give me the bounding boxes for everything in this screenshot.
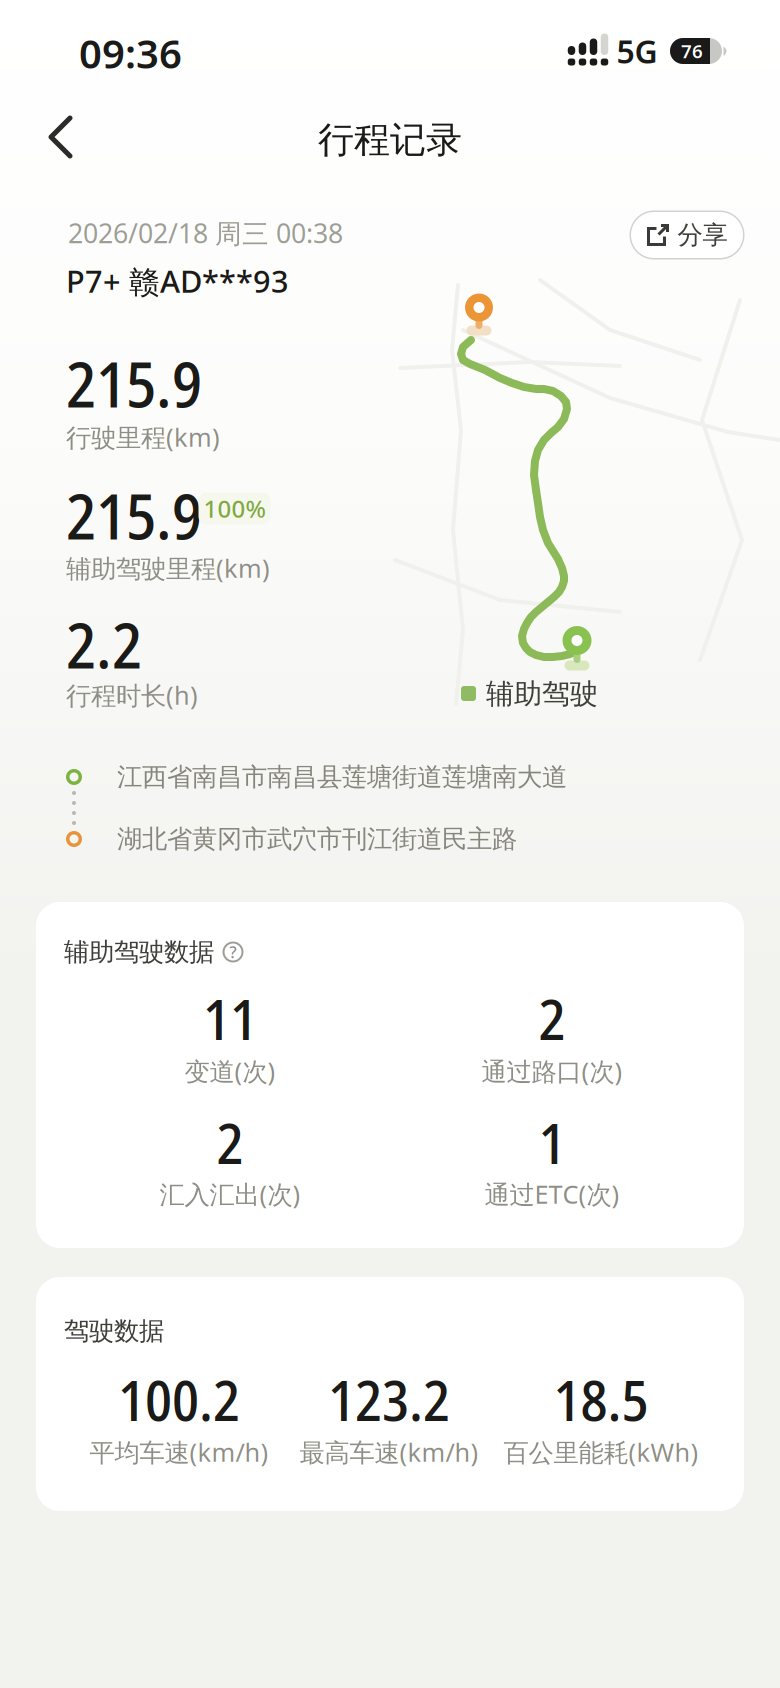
staticText: 76	[681, 39, 703, 63]
staticText: 2026/02/18 周三 00:38	[68, 215, 343, 251]
button[interactable]: 辅助驾驶数据说明	[218, 937, 248, 967]
staticText: 行程记录	[318, 118, 462, 162]
staticText: 辅助驾驶数据	[64, 936, 214, 967]
staticText: ?	[229, 941, 236, 963]
staticText: 分享	[677, 219, 727, 250]
staticText: 变道(次)	[184, 1054, 275, 1088]
staticText: 1	[538, 1103, 565, 1181]
staticText: 11	[203, 979, 257, 1057]
staticText: 百公里能耗(kWh)	[503, 1435, 698, 1469]
staticText: 09:36	[79, 26, 182, 79]
staticText: 平均车速(km/h)	[89, 1435, 268, 1469]
staticText: P7+ 赣AD***93	[66, 261, 289, 301]
staticText: 湖北省黄冈市武穴市刊江街道民主路	[117, 823, 517, 854]
staticText: 最高车速(km/h)	[299, 1435, 478, 1469]
staticText: 2	[216, 1103, 243, 1181]
staticText: 100.2	[118, 1360, 240, 1438]
staticText: 行程时长(h)	[66, 678, 198, 712]
staticText: 18.5	[553, 1360, 648, 1438]
staticText: 215.9	[66, 472, 202, 558]
staticText: 2	[538, 979, 565, 1057]
staticText: 汇入汇出(次)	[159, 1177, 300, 1211]
button[interactable]: 分享	[629, 210, 744, 259]
staticText: 辅助驾驶里程(km)	[66, 551, 270, 585]
staticText: 驾驶数据	[64, 1315, 164, 1346]
staticText: 5G	[616, 30, 657, 72]
staticText: 辅助驾驶	[486, 677, 598, 711]
staticText: 通过ETC(次)	[484, 1177, 619, 1211]
staticText: 行驶里程(km)	[66, 420, 220, 454]
staticText: 123.2	[328, 1360, 450, 1438]
staticText: 100%	[203, 493, 265, 524]
staticText: 江西省南昌市南昌县莲塘街道莲塘南大道	[117, 761, 567, 792]
staticText: 215.9	[66, 340, 202, 426]
button[interactable]: 返回	[40, 115, 84, 159]
staticText: 通过路口(次)	[481, 1054, 622, 1088]
staticText: 2.2	[66, 601, 142, 687]
